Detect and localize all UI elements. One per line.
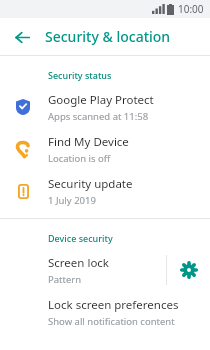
button[interactable]: Screen lock	[0, 249, 166, 291]
staticText: 10:00	[178, 2, 204, 16]
button[interactable]: Back	[8, 23, 36, 51]
staticText: Screen lock	[48, 255, 110, 271]
staticText: Pattern	[48, 273, 82, 286]
staticText: Lock screen preferences	[48, 297, 179, 313]
staticText: Device security	[48, 232, 113, 244]
staticText: Security & location	[45, 27, 171, 46]
staticText: 1 July 2019	[48, 194, 96, 207]
button[interactable]: Google Play Protect	[0, 86, 210, 128]
button[interactable]: Lock screen preferences	[0, 291, 210, 333]
staticText: Google Play Protect	[48, 92, 154, 108]
staticText: Apps scanned at 11:58	[48, 110, 149, 123]
button[interactable]: Security update	[0, 170, 210, 212]
staticText: Find My Device	[48, 134, 129, 150]
staticText: Show all notification content	[48, 315, 175, 328]
staticText: Location is off	[48, 152, 111, 165]
staticText: Security status	[48, 69, 112, 81]
button[interactable]: Screen lock settings	[167, 249, 210, 291]
staticText: Security update	[48, 176, 133, 192]
button[interactable]: Find My Device	[0, 128, 210, 170]
